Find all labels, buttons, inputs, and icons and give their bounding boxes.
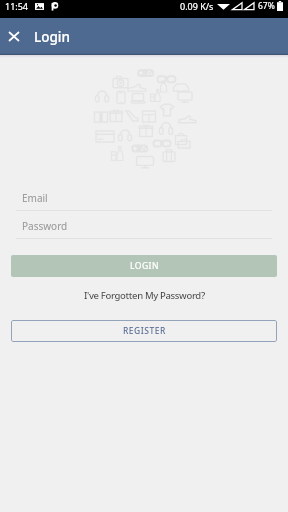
- staticText: LOGIN: [130, 260, 159, 272]
- staticText: Email: [22, 191, 48, 205]
- staticText: Login: [34, 28, 70, 46]
- button[interactable]: I've Forgotten My Password?: [82, 287, 207, 304]
- staticText: 0.09 K/s: [180, 0, 214, 12]
- button[interactable]: Close: [0, 18, 28, 55]
- staticText: 67%: [258, 0, 275, 12]
- staticText: 11:54: [5, 0, 29, 12]
- staticText: Password: [22, 219, 68, 233]
- button[interactable]: LOGIN: [11, 255, 277, 277]
- button[interactable]: REGISTER: [11, 320, 277, 342]
- staticText: REGISTER: [123, 325, 166, 337]
